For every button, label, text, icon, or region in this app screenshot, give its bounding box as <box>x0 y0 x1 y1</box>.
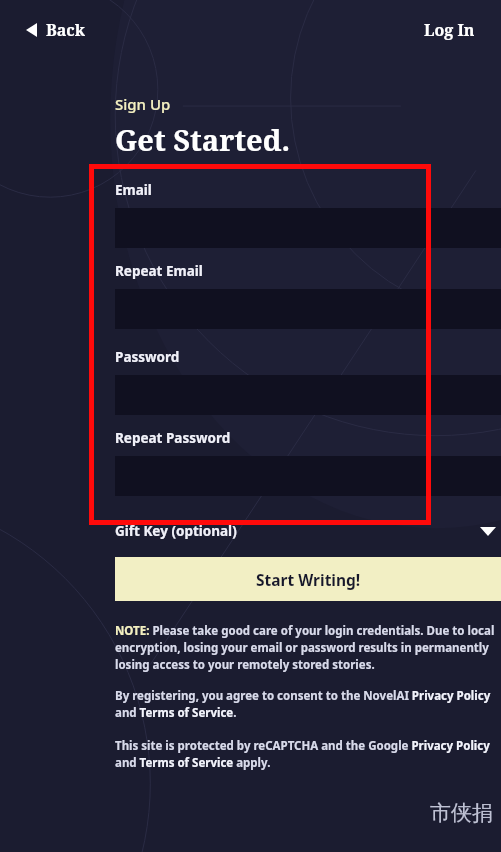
staticText: 市侠捐 <box>430 800 493 826</box>
staticText: Start Writing! <box>256 569 361 590</box>
staticText: Get Started. <box>115 120 290 159</box>
other: Expand gift key <box>475 518 501 544</box>
staticText: Sign Up <box>115 94 171 114</box>
button[interactable] <box>115 375 501 415</box>
staticText: Password <box>115 348 180 366</box>
button[interactable]: Gift Key (optional) <box>115 518 501 544</box>
staticText: NOTE: Please take good care of your logi… <box>115 623 501 673</box>
staticText: Email <box>115 181 152 199</box>
staticText: Repeat Password <box>115 429 231 447</box>
button[interactable]: Start Writing! <box>115 557 501 601</box>
staticText: This site is protected by reCAPTCHA and … <box>115 738 501 771</box>
button[interactable] <box>115 456 501 496</box>
staticText: By registering, you agree to consent to … <box>115 688 501 721</box>
button[interactable] <box>115 208 501 248</box>
button[interactable] <box>115 289 501 329</box>
staticText: Log In <box>424 19 475 41</box>
button[interactable]: Back <box>22 13 89 47</box>
staticText: Back <box>46 19 85 41</box>
staticText: Repeat Email <box>115 262 203 280</box>
button[interactable]: Log In <box>420 13 479 47</box>
staticText: Gift Key (optional) <box>115 522 237 540</box>
